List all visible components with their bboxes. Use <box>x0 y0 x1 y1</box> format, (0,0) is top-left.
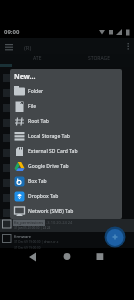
staticText: Google Drive Tab <box>28 163 69 170</box>
button[interactable]: Network (SMB) Tab <box>10 204 122 219</box>
button[interactable] <box>16 248 50 268</box>
button[interactable]: Box Tab <box>10 174 122 189</box>
staticText: External SD Card Tab <box>28 148 78 155</box>
staticText: File <box>28 103 37 110</box>
staticText: New... <box>14 72 36 82</box>
staticText: 09:00 <box>4 28 20 36</box>
staticText: 31 Jan 05 20:00:00 | 24 24 <box>14 226 51 230</box>
button[interactable]: Folder <box>10 84 122 99</box>
staticText: Dropbox Tab <box>28 193 59 200</box>
staticText: Box Tab <box>28 178 47 185</box>
staticText: -3.10.20-24 24 <box>46 220 73 225</box>
button[interactable] <box>0 54 134 67</box>
staticText: ATE <box>33 55 42 62</box>
staticText: (R) <box>24 44 32 52</box>
staticText: fix_permissions <box>14 220 44 225</box>
staticText: Root Tab <box>28 118 49 125</box>
button[interactable]: Local Storage Tab <box>10 129 122 144</box>
staticText: Folder <box>28 88 44 95</box>
button[interactable]: Google Drive Tab <box>10 159 122 174</box>
staticText: 31 Dec 69 19:00:00 | drwxr-xr-x <box>14 240 59 244</box>
button[interactable] <box>84 248 118 268</box>
button[interactable] <box>1 40 17 53</box>
staticText: Local Storage Tab <box>28 133 70 140</box>
button[interactable] <box>104 226 126 248</box>
staticText: STORAGE <box>88 55 110 62</box>
button[interactable] <box>50 248 84 268</box>
button[interactable] <box>122 40 134 53</box>
button[interactable]: External SD Card Tab <box>10 144 122 159</box>
staticText: 31 Dec 69 19:00:00 <box>14 246 41 250</box>
button[interactable]: File <box>10 99 122 114</box>
staticText: Network (SMB) Tab <box>28 208 74 215</box>
staticText: firmware <box>14 234 32 239</box>
button[interactable]: Dropbox Tab <box>10 189 122 204</box>
button[interactable]: Root Tab <box>10 114 122 129</box>
